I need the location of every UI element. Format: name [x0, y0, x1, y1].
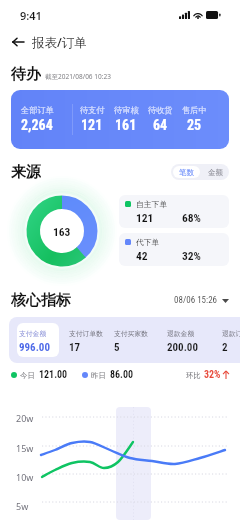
staticText: 996.00 — [19, 341, 50, 354]
staticText: 待审核 — [114, 105, 139, 115]
button[interactable]: 全部订单 — [11, 90, 229, 149]
staticText: 32% — [204, 369, 221, 381]
staticText: 25 — [187, 117, 202, 133]
button[interactable]: 08/06 15:26 — [174, 295, 229, 306]
button[interactable]: 自主下单 — [119, 195, 229, 228]
staticText: 支付订单数 — [69, 329, 103, 338]
staticText: 17 — [69, 341, 81, 354]
button[interactable]: 代下单 — [119, 233, 229, 266]
staticText: 支付买家数 — [114, 329, 148, 338]
button[interactable]: 待支付 — [75, 90, 109, 149]
staticText: 5 — [114, 341, 120, 354]
staticText: 10w — [16, 471, 34, 483]
staticText: 报表/订单 — [32, 34, 87, 51]
button[interactable]: 支付金额 — [17, 323, 59, 357]
staticText: 161 — [115, 117, 137, 133]
button[interactable]: 金额 — [208, 164, 223, 180]
button[interactable]: 待收货 — [143, 90, 177, 149]
staticText: 核心指标 — [11, 291, 71, 309]
button[interactable]: Back — [11, 33, 25, 51]
button[interactable]: 退款订单数 — [198, 317, 240, 363]
staticText: 9:41 — [20, 8, 42, 23]
button[interactable]: 全部订单 — [11, 90, 72, 149]
staticText: 代下单 — [136, 237, 160, 247]
staticText: 121.00 — [39, 369, 68, 381]
staticText: 待办 — [11, 65, 41, 83]
button[interactable]: 退款金额 — [148, 317, 198, 363]
button[interactable]: 待审核 — [109, 90, 143, 149]
staticText: 待支付 — [80, 105, 105, 115]
staticText: 121 — [81, 117, 103, 133]
staticText: 支付金额 — [19, 329, 47, 338]
staticText: 68% — [182, 211, 201, 224]
staticText: 自主下单 — [136, 199, 168, 209]
staticText: 昨日 — [91, 371, 106, 380]
button[interactable]: 支付订单数 — [59, 317, 103, 363]
button[interactable]: 笔数 — [179, 166, 194, 178]
staticText: 截至2021/08/06 10:23 — [45, 72, 111, 81]
button[interactable]: 支付买家数 — [103, 317, 148, 363]
staticText: 全部订单 — [21, 105, 54, 115]
staticText: 15w — [16, 442, 34, 454]
staticText: 来源 — [11, 163, 41, 181]
staticText: 163 — [53, 225, 71, 238]
button[interactable]: 售后中 — [177, 90, 211, 149]
staticText: 64 — [153, 117, 168, 133]
staticText: 121 — [136, 211, 154, 224]
staticText: 42 — [136, 249, 148, 262]
staticText: 32% — [182, 249, 201, 262]
staticText: 08/06 15:26 — [174, 295, 218, 306]
staticText: 金额 — [208, 168, 223, 177]
staticText: 5w — [16, 500, 29, 512]
staticText: 2 — [222, 341, 228, 354]
staticText: 退款金额 — [167, 329, 195, 338]
staticText: 200.00 — [167, 341, 198, 354]
staticText: 待收货 — [148, 105, 173, 115]
staticText: 售后中 — [182, 105, 207, 115]
staticText: 环比 — [186, 371, 201, 380]
staticText: 2,264 — [21, 117, 53, 133]
staticText: 今日 — [20, 371, 35, 380]
staticText: 86.00 — [110, 369, 134, 381]
staticText: 退款订单数 — [222, 329, 240, 338]
staticText: 20w — [16, 412, 34, 424]
staticText: 笔数 — [179, 168, 194, 177]
